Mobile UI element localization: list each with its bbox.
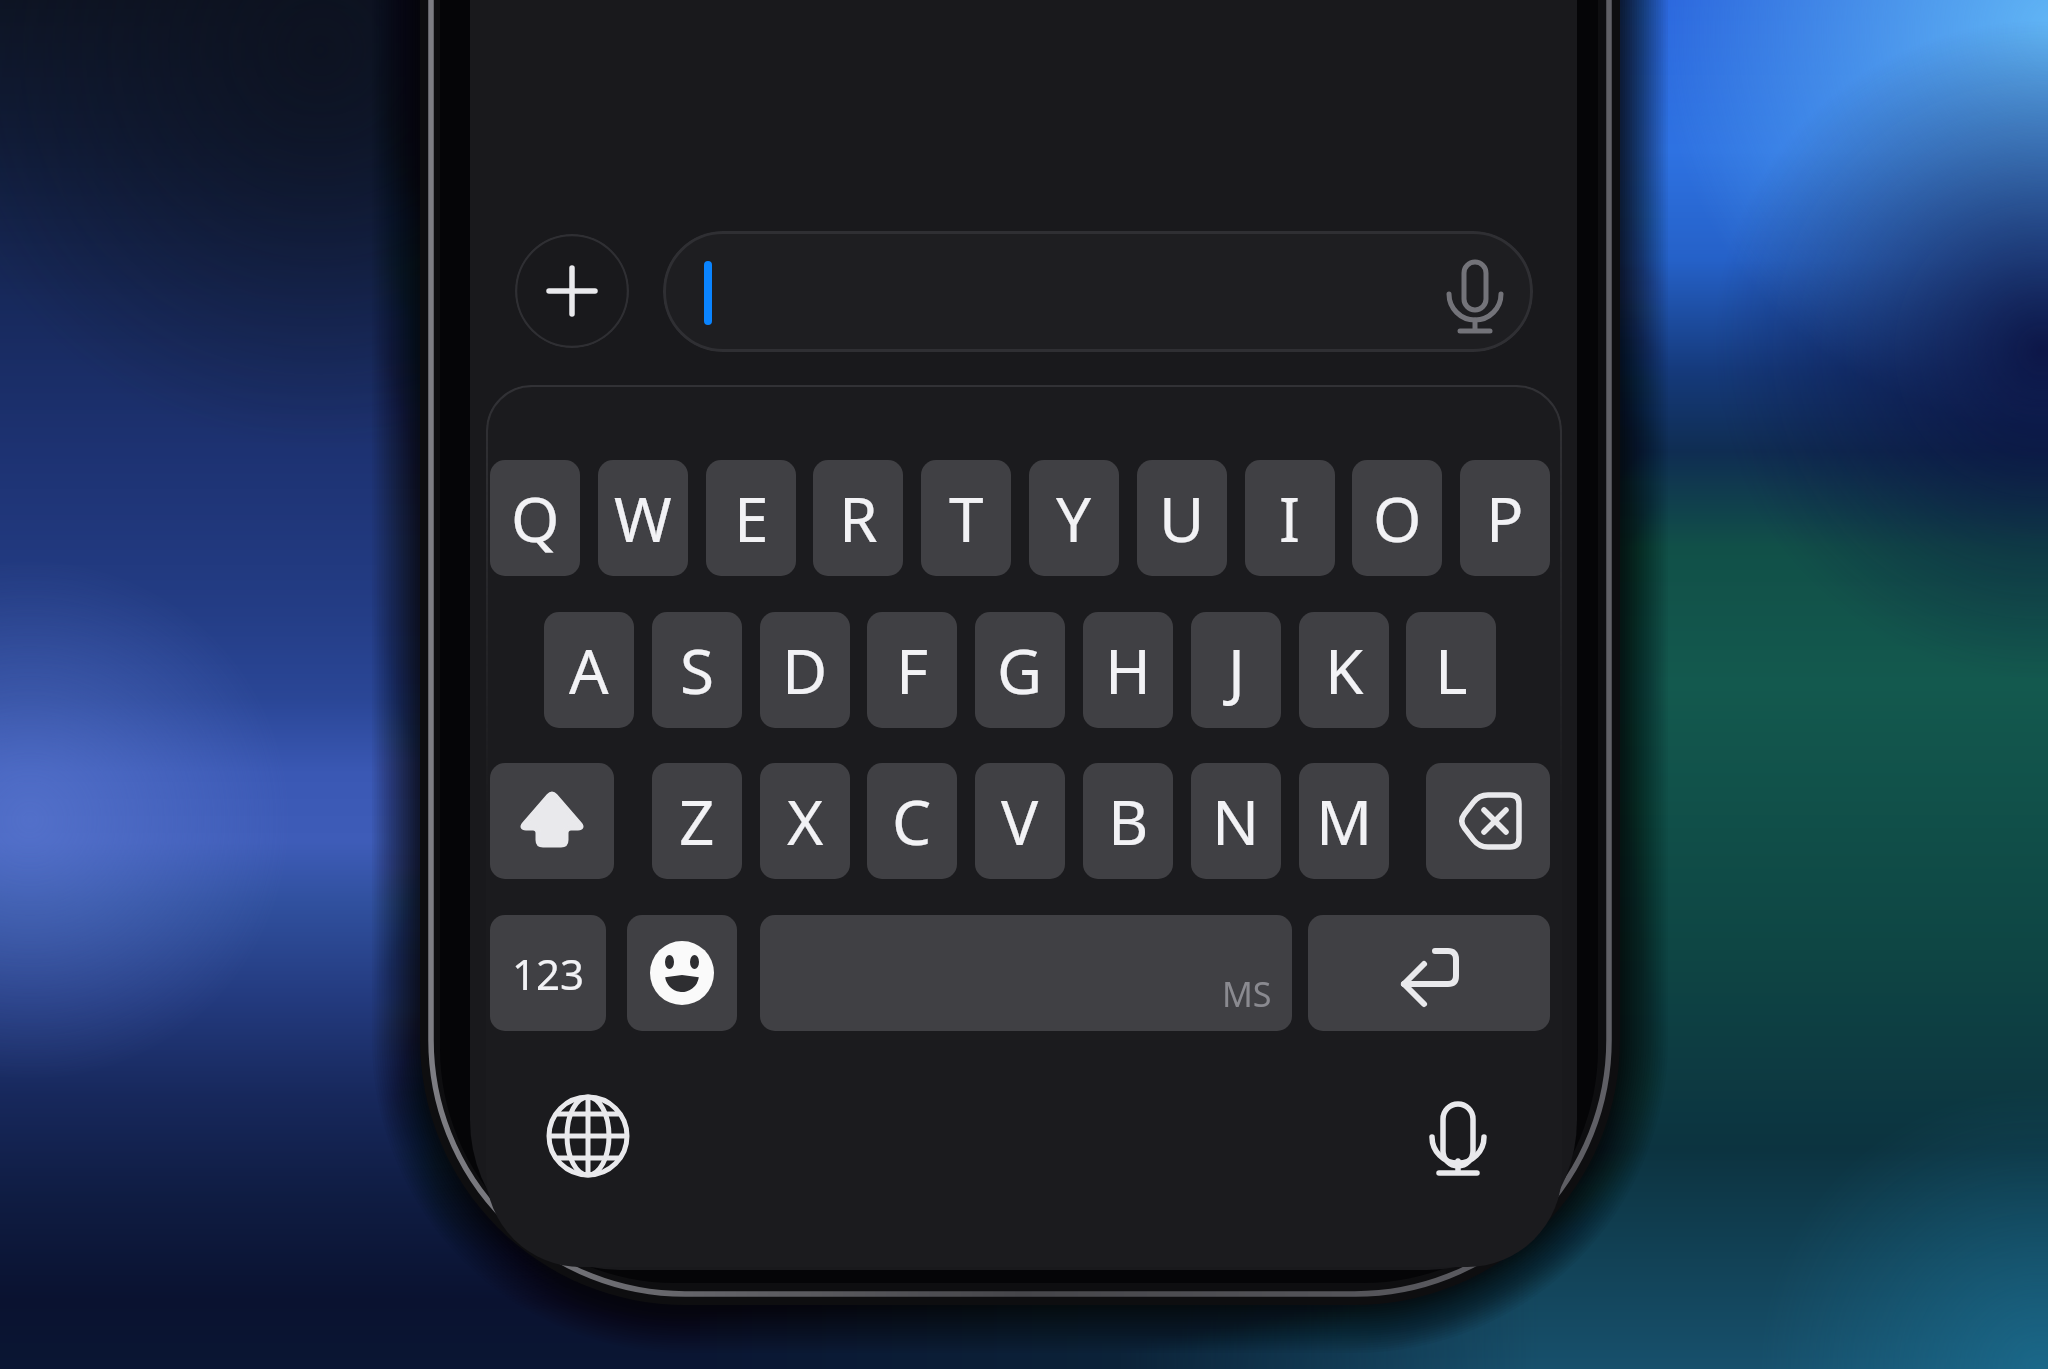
staticText: 123 [512, 945, 585, 1002]
button[interactable]: 123 [490, 915, 606, 1031]
staticText: N [1212, 779, 1260, 863]
button[interactable]: W [598, 460, 688, 576]
button[interactable]: X [760, 763, 850, 879]
button[interactable]: E [706, 460, 796, 576]
button[interactable]: H [1083, 612, 1173, 728]
staticText: G [997, 628, 1043, 712]
button[interactable] [515, 234, 629, 348]
staticText: MS [1222, 971, 1272, 1017]
button[interactable]: P [1460, 460, 1550, 576]
button[interactable] [663, 231, 1533, 352]
staticText: Q [511, 476, 560, 560]
button[interactable]: T [921, 460, 1011, 576]
button[interactable] [490, 763, 614, 879]
staticText: P [1486, 476, 1524, 560]
button[interactable]: K [1299, 612, 1389, 728]
button[interactable] [1403, 1085, 1513, 1195]
staticText: I [1279, 476, 1301, 560]
staticText: C [892, 779, 932, 863]
staticText: W [614, 476, 672, 560]
button[interactable]: Y [1029, 460, 1119, 576]
staticText: F [896, 628, 929, 712]
staticText: Y [1056, 476, 1092, 560]
staticText: D [782, 628, 828, 712]
button[interactable] [627, 915, 737, 1031]
staticText: U [1159, 476, 1205, 560]
button[interactable]: R [813, 460, 903, 576]
staticText: J [1228, 628, 1245, 712]
button[interactable]: O [1352, 460, 1442, 576]
button[interactable]: S [652, 612, 742, 728]
button[interactable]: G [975, 612, 1065, 728]
button[interactable]: D [760, 612, 850, 728]
staticText: R [839, 476, 878, 560]
staticText: L [1435, 628, 1468, 712]
button[interactable]: A [544, 612, 634, 728]
button[interactable] [1426, 763, 1550, 879]
button[interactable]: M [1299, 763, 1389, 879]
staticText: T [949, 476, 984, 560]
button[interactable]: U [1137, 460, 1227, 576]
button[interactable]: J [1191, 612, 1281, 728]
button[interactable]: I [1245, 460, 1335, 576]
button[interactable] [533, 1081, 643, 1191]
staticText: O [1373, 476, 1422, 560]
staticText: B [1108, 779, 1149, 863]
button[interactable]: V [975, 763, 1065, 879]
staticText: K [1325, 628, 1364, 712]
button[interactable]: B [1083, 763, 1173, 879]
button[interactable]: C [867, 763, 957, 879]
staticText: E [734, 476, 769, 560]
button[interactable]: L [1406, 612, 1496, 728]
button[interactable]: Z [652, 763, 742, 879]
staticText: M [1316, 779, 1373, 863]
staticText: H [1105, 628, 1151, 712]
staticText: Z [679, 779, 715, 863]
button[interactable]: MS [760, 915, 1292, 1031]
button[interactable] [1308, 915, 1550, 1031]
staticText: X [787, 779, 824, 863]
button[interactable]: F [867, 612, 957, 728]
staticText: V [1001, 779, 1039, 863]
staticText: S [680, 628, 715, 712]
staticText: A [569, 628, 609, 712]
button[interactable]: N [1191, 763, 1281, 879]
button[interactable]: Q [490, 460, 580, 576]
